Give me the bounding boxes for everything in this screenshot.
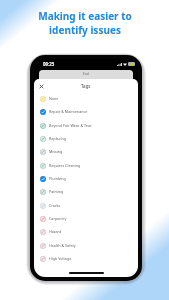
staticText: Carpentry — [49, 216, 67, 221]
staticText: Tags — [81, 83, 91, 89]
staticText: None — [49, 96, 59, 101]
button[interactable]: High Voltage — [34, 252, 138, 265]
staticText: Making it easier to — [38, 9, 132, 23]
staticText: Requires Cleaning — [49, 163, 81, 168]
button[interactable]: Replacing — [34, 132, 138, 145]
staticText: Repair & Maintenance — [49, 109, 88, 114]
button[interactable]: Close — [37, 82, 45, 90]
staticText: Hazard — [49, 229, 62, 234]
button[interactable]: Missing — [34, 145, 138, 158]
staticText: Cracks — [49, 203, 61, 208]
button[interactable]: Health & Safety — [34, 239, 138, 252]
staticText: 09:25 — [43, 61, 55, 67]
button[interactable]: Plumbing — [34, 172, 138, 185]
button[interactable]: Requires Cleaning — [34, 159, 138, 172]
staticText: End — [83, 72, 89, 76]
button[interactable]: Cracks — [34, 199, 138, 212]
staticText: Beyond Fair Wear & Tear — [49, 123, 92, 128]
staticText: Missing — [49, 149, 63, 154]
staticText: Health & Safety — [49, 243, 76, 248]
staticText: Plumbing — [49, 176, 66, 181]
button[interactable]: Hazard — [34, 225, 138, 238]
staticText: identify issues — [49, 23, 121, 37]
button[interactable]: Repair & Maintenance — [34, 105, 138, 118]
staticText: Replacing — [49, 136, 66, 141]
staticText: Painting — [49, 189, 64, 194]
button[interactable]: Carpentry — [34, 212, 138, 225]
staticText: High Voltage — [49, 256, 72, 261]
button[interactable]: None — [34, 92, 138, 105]
button[interactable]: Beyond Fair Wear & Tear — [34, 119, 138, 132]
button[interactable]: Painting — [34, 185, 138, 198]
